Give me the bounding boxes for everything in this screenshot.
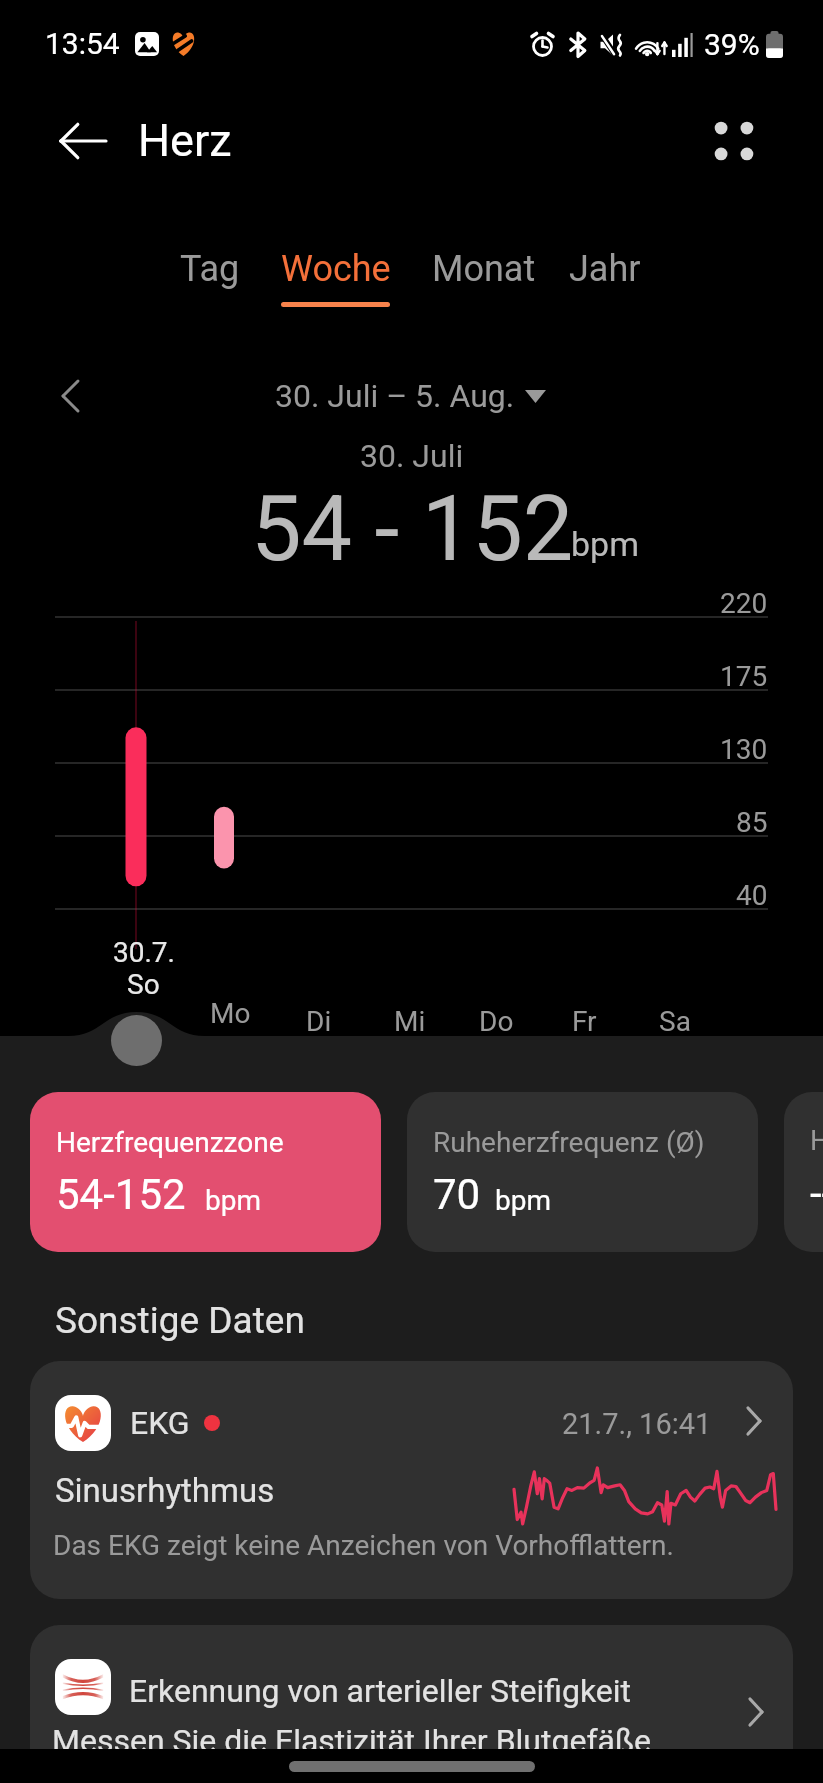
staticText: 21.7., 16:41 [562,1407,712,1441]
staticText: Monat [432,248,536,290]
button[interactable]: Monat [424,248,544,320]
staticText: So [127,968,160,1001]
staticText: Tag [180,248,240,290]
staticText: bpm [495,1184,551,1217]
staticText: Di [306,1005,332,1038]
button[interactable]: Herzfrequenzzone [30,1092,381,1252]
staticText: Das EKG zeigt keine Anzeichen von Vorhof… [53,1529,674,1562]
staticText: 130 [720,733,768,766]
staticText: 220 [720,587,768,620]
staticText: Herz [138,114,232,167]
button[interactable]: 30. Juli – 5. Aug. [268,370,558,424]
button[interactable]: Vorherige Woche [44,370,96,422]
staticText: 54 - 152 [251,477,574,582]
button[interactable]: EKG [30,1361,793,1599]
staticText: 30. Juli – 5. Aug. [275,377,515,415]
button[interactable]: Woche [281,248,390,320]
staticText: bpm [571,524,639,564]
staticText: 30. Juli [360,437,464,475]
staticText: Herzfrequenzzone [56,1126,284,1159]
staticText: Mo [210,997,251,1030]
staticText: Mi [394,1005,426,1038]
button[interactable]: Ruheherzfrequenz (Ø) [407,1092,758,1252]
staticText: Sonstige Daten [55,1299,305,1342]
staticText: Sinusrhythmus [55,1471,275,1510]
staticText: Ruheherzfrequenz (Ø) [433,1126,705,1159]
staticText: 54-152 [56,1170,186,1219]
staticText: Fr [572,1005,597,1038]
staticText: Erkennung von arterieller Steifigkeit [129,1672,632,1710]
button[interactable]: Weitere Optionen [696,103,772,179]
button[interactable]: Erkennung von arterieller Steifigkeit [30,1625,793,1783]
staticText: 13:54 [45,26,120,61]
staticText: 85 [736,806,768,839]
staticText: -- [810,1169,823,1218]
staticText: EKG [130,1404,190,1442]
staticText: 30.7. [113,936,175,969]
staticText: 70 [433,1170,481,1219]
button[interactable]: Jahr [560,248,650,320]
staticText: 175 [720,660,768,693]
staticText: bpm [205,1184,261,1217]
staticText: Do [479,1005,514,1038]
button[interactable]: Zurück [53,112,111,170]
staticText: Jahr [569,248,641,290]
staticText: Herzfr [810,1124,823,1157]
staticText: 39% [704,27,760,62]
button[interactable]: Herzfr [784,1092,823,1252]
staticText: Sa [659,1005,691,1038]
staticText: Woche [281,248,390,290]
staticText: 40 [736,879,768,912]
button[interactable]: Tag [167,248,252,320]
staticText: Messen Sie die Elastizität Ihrer Blutgef… [52,1722,651,1760]
